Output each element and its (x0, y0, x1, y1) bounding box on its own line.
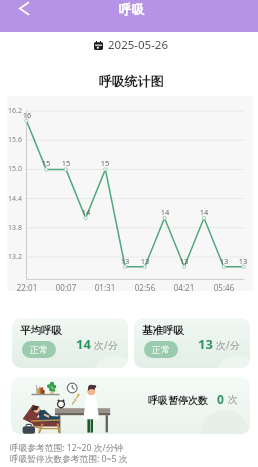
staticText: 15.6 (8, 135, 22, 145)
staticText: 14 (76, 335, 91, 353)
staticText: 呼吸暂停次数 (148, 394, 208, 407)
staticText: 04:21 (172, 282, 196, 293)
staticText: 13 (198, 335, 213, 353)
button[interactable]: Back (8, 0, 40, 20)
button[interactable]: 平均呼吸 (12, 318, 128, 368)
staticText: 22:01 (15, 282, 39, 293)
staticText: 14.4 (8, 194, 22, 204)
button[interactable]: 呼吸暂停次数 (11, 377, 250, 434)
staticText: 15 (41, 158, 51, 168)
staticText: 05:46 (212, 282, 236, 293)
staticText: 次 (228, 393, 238, 406)
staticText: 基准呼吸 (142, 324, 184, 337)
staticText: 00:07 (54, 282, 78, 293)
staticText: 16 (22, 110, 32, 120)
button[interactable]: 基准呼吸 (134, 318, 250, 368)
staticText: 次/分 (216, 338, 240, 352)
button[interactable]: 2025-05-26 (2, 37, 258, 53)
staticText: 2025-05-26 (108, 37, 169, 53)
staticText: 13.2 (8, 252, 22, 262)
staticText: 正常 (152, 344, 170, 355)
staticText: 16.2 (8, 106, 22, 116)
staticText: 02:56 (133, 282, 157, 293)
staticText: 0 (217, 391, 224, 407)
staticText: 15.0 (8, 164, 22, 174)
staticText: 次/分 (94, 338, 118, 352)
staticText: 13 (140, 256, 150, 266)
staticText: 呼吸暂停次数参考范围: 0~5 次 (10, 453, 128, 465)
staticText: 13 (219, 256, 229, 266)
staticText: 14 (199, 207, 209, 217)
staticText: 13.8 (8, 223, 22, 233)
staticText: 正常 (30, 344, 48, 355)
staticText: 15 (100, 158, 110, 168)
staticText: 01:31 (93, 282, 117, 293)
staticText: 13 (238, 256, 248, 266)
staticText: 13 (179, 256, 189, 266)
staticText: 13 (120, 256, 130, 266)
staticText: 15 (61, 158, 71, 168)
staticText: 平均呼吸 (20, 324, 62, 337)
staticText: 14 (81, 207, 91, 217)
staticText: 呼吸参考范围: 12~20 次/分钟 (10, 442, 124, 454)
staticText: 呼吸 (119, 2, 144, 18)
staticText: 14 (160, 207, 170, 217)
staticText: 呼吸统计图 (2, 73, 258, 89)
